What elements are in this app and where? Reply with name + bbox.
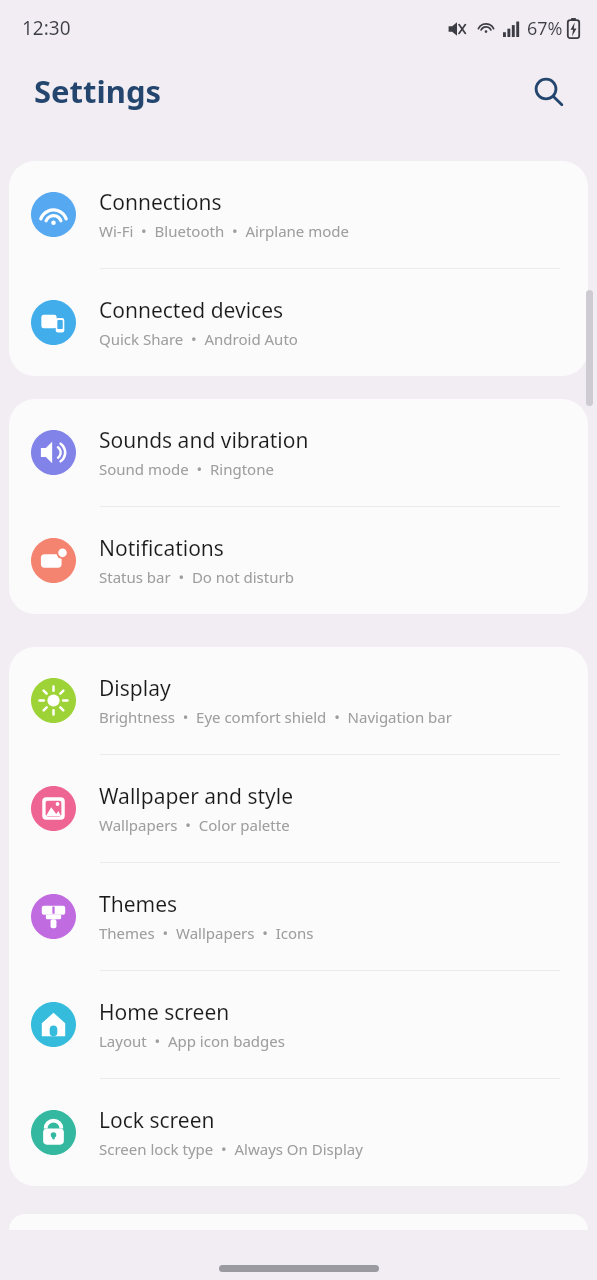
- button[interactable]: Search: [525, 68, 571, 114]
- staticText: Display: [99, 674, 171, 703]
- staticText: Notifications: [99, 534, 224, 563]
- staticText: Wi-Fi • Bluetooth • Airplane mode: [99, 221, 349, 241]
- button[interactable]: Home screen: [9, 971, 588, 1078]
- button[interactable]: Themes: [9, 863, 588, 970]
- staticText: Wallpapers • Color palette: [99, 815, 290, 835]
- staticText: Home screen: [99, 998, 230, 1027]
- staticText: Settings: [34, 70, 162, 112]
- staticText: Sound mode • Ringtone: [99, 459, 274, 479]
- staticText: Themes: [99, 890, 178, 919]
- staticText: Quick Share • Android Auto: [99, 329, 298, 349]
- staticText: 67%: [527, 16, 563, 41]
- button[interactable]: Notifications: [9, 507, 588, 614]
- button[interactable]: Display: [9, 647, 588, 754]
- staticText: Connections: [99, 188, 222, 217]
- button[interactable]: Wallpaper and style: [9, 755, 588, 862]
- staticText: Brightness • Eye comfort shield • Naviga…: [99, 707, 452, 727]
- button[interactable]: Connections: [9, 161, 588, 268]
- button[interactable]: Lock screen: [9, 1079, 588, 1186]
- button[interactable]: Connected devices: [9, 269, 588, 376]
- staticText: Screen lock type • Always On Display: [99, 1139, 363, 1159]
- staticText: 12:30: [22, 15, 71, 41]
- staticText: Connected devices: [99, 296, 284, 325]
- staticText: Wallpaper and style: [99, 782, 294, 811]
- staticText: Layout • App icon badges: [99, 1031, 285, 1051]
- staticText: Lock screen: [99, 1106, 215, 1135]
- staticText: Sounds and vibration: [99, 426, 309, 455]
- button[interactable]: Sounds and vibration: [9, 399, 588, 506]
- staticText: Status bar • Do not disturb: [99, 567, 294, 587]
- staticText: Themes • Wallpapers • Icons: [99, 923, 314, 943]
